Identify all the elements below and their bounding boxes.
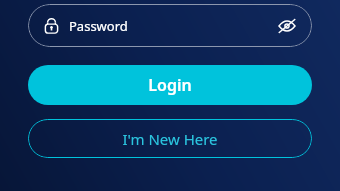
other: Password [43, 17, 60, 34]
button[interactable]: Show password [276, 15, 298, 37]
button[interactable]: Login [28, 65, 312, 105]
button[interactable]: Password [28, 4, 312, 47]
staticText: Password [69, 17, 128, 35]
staticText: Login [148, 74, 192, 96]
button[interactable]: I'm New Here [28, 119, 312, 158]
staticText: I'm New Here [122, 129, 218, 149]
